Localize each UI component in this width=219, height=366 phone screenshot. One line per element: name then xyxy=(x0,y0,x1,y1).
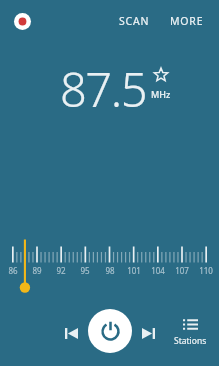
staticText: 87.5 xyxy=(60,57,146,121)
staticText: 101 xyxy=(127,265,141,276)
staticText: 86 xyxy=(8,265,18,276)
button[interactable]: 86 xyxy=(0,232,219,296)
button[interactable]: MORE xyxy=(162,8,212,34)
staticText: MHz xyxy=(151,88,171,100)
staticText: 110 xyxy=(199,265,213,276)
button[interactable]: Stations xyxy=(168,313,213,351)
staticText: 107 xyxy=(175,265,189,276)
button[interactable]: Next station xyxy=(134,319,162,347)
staticText: Stations xyxy=(174,335,207,347)
staticText: 98 xyxy=(105,265,115,276)
button[interactable]: Record xyxy=(7,6,37,36)
staticText: 104 xyxy=(151,265,165,276)
staticText: SCAN xyxy=(119,14,150,28)
staticText: 89 xyxy=(32,265,42,276)
button[interactable]: SCAN xyxy=(111,8,158,34)
staticText: MORE xyxy=(170,14,204,28)
button[interactable]: Previous station xyxy=(57,319,85,347)
button[interactable]: Power xyxy=(88,309,132,353)
button[interactable]: Add to favorites xyxy=(151,65,171,85)
staticText: 92 xyxy=(56,265,66,276)
staticText: 95 xyxy=(80,265,90,276)
